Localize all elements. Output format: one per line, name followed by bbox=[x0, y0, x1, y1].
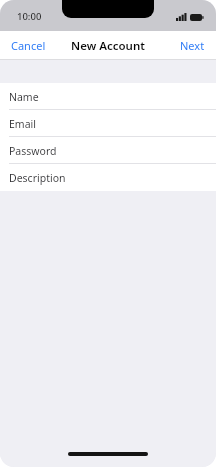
staticText: Cancel bbox=[11, 38, 46, 53]
staticText: Email bbox=[9, 117, 36, 131]
button[interactable]: Name bbox=[0, 83, 216, 110]
staticText: Password bbox=[9, 144, 57, 158]
staticText: 10:00 bbox=[17, 10, 42, 23]
button[interactable]: Next bbox=[169, 33, 216, 58]
button[interactable]: Cancel bbox=[0, 33, 57, 58]
button[interactable]: Password bbox=[0, 137, 216, 164]
staticText: Next bbox=[180, 38, 205, 53]
button[interactable]: Description bbox=[0, 164, 216, 191]
button[interactable]: Email bbox=[0, 110, 216, 137]
staticText: New Account bbox=[71, 38, 145, 54]
staticText: Name bbox=[9, 90, 39, 104]
staticText: Description bbox=[9, 171, 66, 185]
